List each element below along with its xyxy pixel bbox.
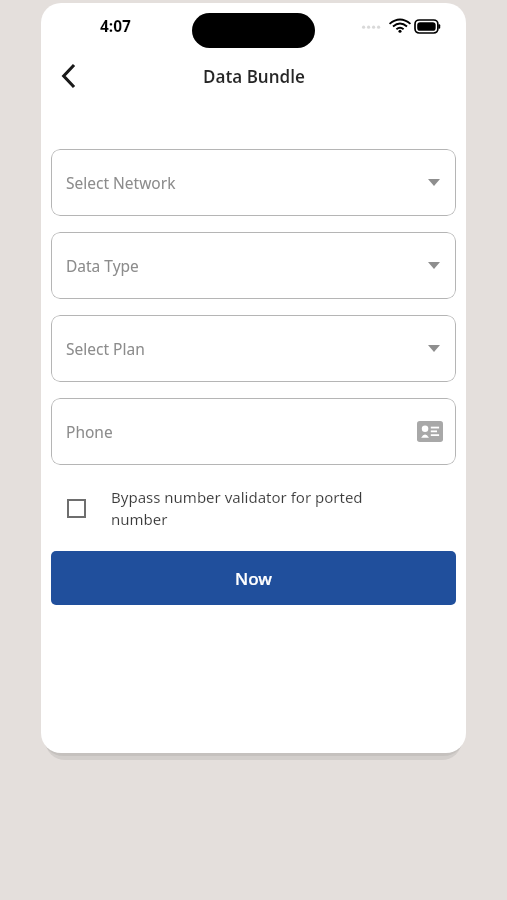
button[interactable]: Phone [51, 398, 456, 465]
button[interactable]: Select Plan [51, 315, 456, 382]
staticText: Select Plan [66, 338, 145, 359]
staticText: Select Network [66, 172, 176, 193]
staticText: Bypass number validator for ported numbe… [111, 487, 386, 530]
staticText: Data Bundle [203, 65, 305, 88]
button[interactable]: Back [47, 54, 91, 98]
staticText: Data Type [66, 255, 139, 276]
staticText: Phone [66, 421, 113, 442]
staticText: Now [235, 567, 272, 590]
button[interactable]: Select Network [51, 149, 456, 216]
staticText: 4:07 [100, 15, 131, 36]
button[interactable]: Bypass number validator for ported numbe… [51, 481, 456, 536]
button[interactable]: Data Type [51, 232, 456, 299]
button[interactable]: Now [51, 551, 456, 605]
